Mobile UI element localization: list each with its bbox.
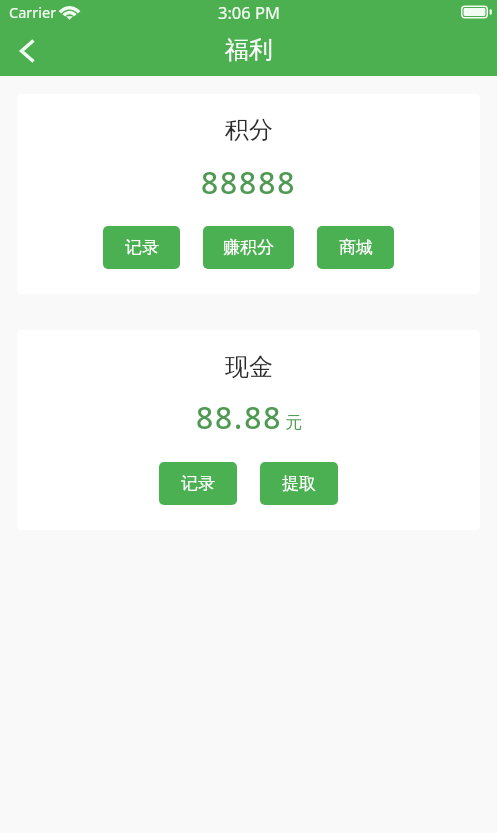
button[interactable]: Back — [0, 24, 52, 76]
button[interactable]: 赚积分 — [203, 226, 294, 269]
button[interactable]: 提取 — [260, 462, 338, 505]
staticText: 元 — [285, 412, 302, 433]
staticText: 商城 — [339, 237, 373, 258]
staticText: 提取 — [282, 473, 316, 494]
staticText: 赚积分 — [223, 237, 274, 258]
staticText: Carrier — [9, 2, 57, 22]
staticText: 88888 — [201, 162, 297, 203]
staticText: 福利 — [225, 35, 273, 65]
staticText: 现金 — [225, 352, 273, 382]
button[interactable]: 记录 — [159, 462, 237, 505]
staticText: 3:06 PM — [218, 1, 280, 23]
staticText: 积分 — [225, 115, 273, 145]
staticText: 记录 — [125, 237, 159, 258]
staticText: 记录 — [181, 473, 215, 494]
staticText: 88.88 — [196, 397, 283, 438]
button[interactable]: 商城 — [317, 226, 394, 269]
button[interactable]: 记录 — [103, 226, 180, 269]
